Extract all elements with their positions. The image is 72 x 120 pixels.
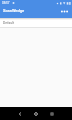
staticText: ScanWedge [3,8,25,13]
button[interactable]: More options [58,4,70,18]
staticText: Default [3,21,15,25]
staticText: 08:57 [2,1,10,5]
button[interactable]: Recent apps [44,107,59,120]
button[interactable]: Home [28,107,43,120]
button[interactable]: Default [0,18,72,27]
button[interactable]: Back [12,107,27,120]
